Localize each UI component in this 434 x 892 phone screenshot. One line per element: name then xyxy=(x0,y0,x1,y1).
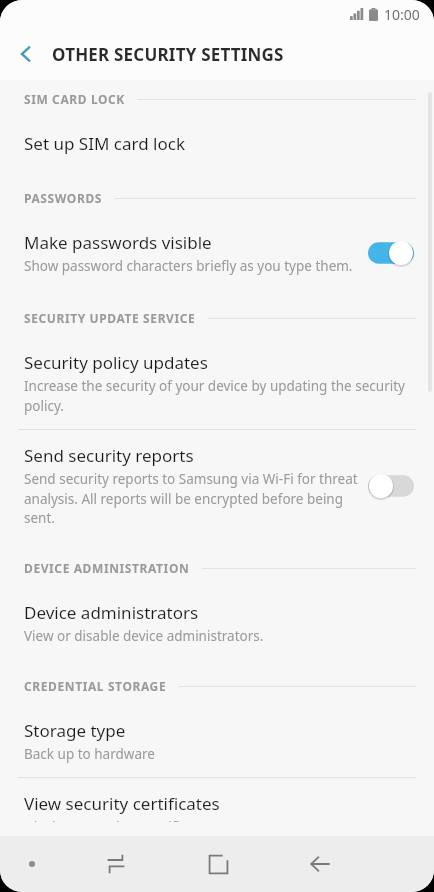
button[interactable]: Home xyxy=(167,836,269,892)
button[interactable]: Recents xyxy=(64,836,167,892)
staticText: Show password characters briefly as you … xyxy=(24,257,353,275)
staticText: Device administrators xyxy=(24,601,199,624)
staticText: Back up to hardware xyxy=(24,745,155,763)
button[interactable]: Back xyxy=(269,836,371,892)
button[interactable]: Back xyxy=(0,28,52,80)
staticText: Send security reports xyxy=(24,444,194,467)
staticText: DEVICE ADMINISTRATION xyxy=(24,560,190,576)
button[interactable]: Storage type xyxy=(0,705,434,777)
staticText: SIM CARD LOCK xyxy=(24,91,125,107)
staticText: PASSWORDS xyxy=(24,190,103,206)
staticText: Storage type xyxy=(24,719,126,742)
staticText: Set up SIM card lock xyxy=(24,132,185,155)
button[interactable]: Device administrators xyxy=(0,587,434,659)
button[interactable]: Set up SIM card lock xyxy=(0,118,434,169)
button[interactable]: Security policy updates xyxy=(0,337,434,429)
button[interactable]: View security certificates xyxy=(0,778,434,836)
staticText: SECURITY UPDATE SERVICE xyxy=(24,310,196,326)
button[interactable]: Make passwords visible xyxy=(0,217,434,289)
staticText: 10:00 xyxy=(384,5,420,24)
staticText: OTHER SECURITY SETTINGS xyxy=(52,43,284,66)
staticText: Send security reports to Samsung via Wi-… xyxy=(24,470,360,527)
staticText: View security certificates xyxy=(24,792,220,815)
staticText: View or disable device administrators. xyxy=(24,627,264,645)
staticText: CREDENTIAL STORAGE xyxy=(24,678,167,694)
staticText: Security policy updates xyxy=(24,351,208,374)
staticText: Increase the security of your device by … xyxy=(24,377,406,415)
staticText: Make passwords visible xyxy=(24,231,212,254)
staticText: Display trusted CA certificates. xyxy=(24,818,217,822)
button[interactable]: Send security reports xyxy=(0,430,434,541)
